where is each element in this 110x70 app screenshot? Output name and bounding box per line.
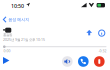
button[interactable]: Share	[85, 28, 94, 37]
staticText: -0:32	[98, 49, 106, 53]
staticText: 2025년 9월 21일 오후 10:15	[3, 37, 45, 42]
button[interactable]: Play	[1, 55, 11, 66]
button[interactable]: 음성 메시지	[0, 15, 48, 24]
button[interactable]: Speaker	[62, 56, 73, 67]
staticText: 음성 메시지	[8, 17, 29, 22]
staticText: 10:50	[11, 2, 24, 9]
button[interactable]: End call	[94, 56, 105, 67]
staticText: 0:00	[3, 49, 10, 53]
button[interactable]: Info	[97, 28, 106, 38]
button[interactable]: Call	[78, 56, 89, 67]
staticText: 홍길동	[3, 33, 12, 37]
